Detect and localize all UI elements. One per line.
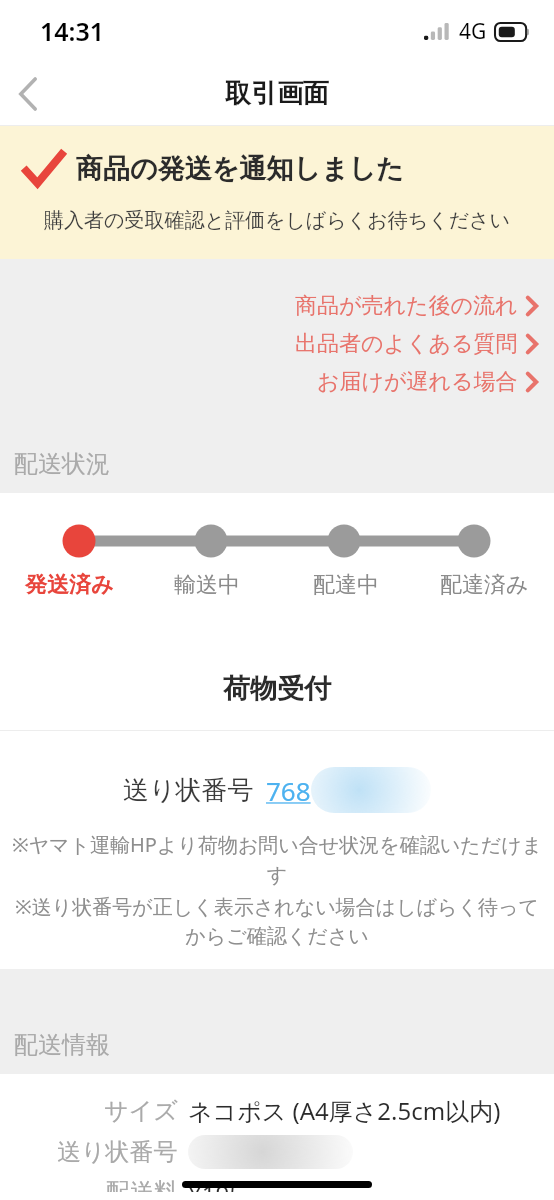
staticText: 商品の発送を通知しました xyxy=(76,152,404,186)
staticText: サイズ xyxy=(104,1096,178,1126)
staticText: お届けが遅れる場合 xyxy=(317,368,518,396)
staticText: 発送済み xyxy=(25,571,114,599)
staticText: 配達中 xyxy=(313,571,379,599)
button[interactable]: 768 xyxy=(266,767,431,813)
staticText: 荷物受付 xyxy=(223,672,331,706)
staticText: ネコポス (A4厚さ2.5cm以内) xyxy=(188,1094,501,1127)
staticText: 配送状況 xyxy=(14,449,110,479)
staticText: 14:31 xyxy=(40,14,105,48)
staticText: 商品が売れた後の流れ xyxy=(295,292,518,320)
staticText: ¥195 xyxy=(188,1177,243,1192)
staticText: 4G xyxy=(459,17,487,46)
staticText: 購入者の受取確認と評価をしばらくお待ちください xyxy=(0,208,554,233)
staticText: 配送料 xyxy=(106,1177,178,1192)
button[interactable]: 出品者のよくある質問 xyxy=(0,325,554,363)
staticText: 取引画面 xyxy=(225,77,329,110)
staticText: ※ヤマト運輸HPより荷物お問い合せ状況を確認いただけます ※送り状番号が正しく表… xyxy=(10,831,544,949)
button[interactable]: 戻る xyxy=(0,66,56,122)
staticText: 配送情報 xyxy=(14,1030,110,1060)
staticText: 出品者のよくある質問 xyxy=(295,330,518,358)
staticText: 輸送中 xyxy=(174,571,240,599)
staticText: 配達済み xyxy=(440,571,529,599)
staticText: 送り状番号 xyxy=(57,1137,178,1167)
button[interactable]: 商品が売れた後の流れ xyxy=(0,287,554,325)
staticText: 768 xyxy=(266,773,311,808)
button[interactable]: お届けが遅れる場合 xyxy=(0,363,554,401)
staticText: 送り状番号 xyxy=(123,774,254,807)
